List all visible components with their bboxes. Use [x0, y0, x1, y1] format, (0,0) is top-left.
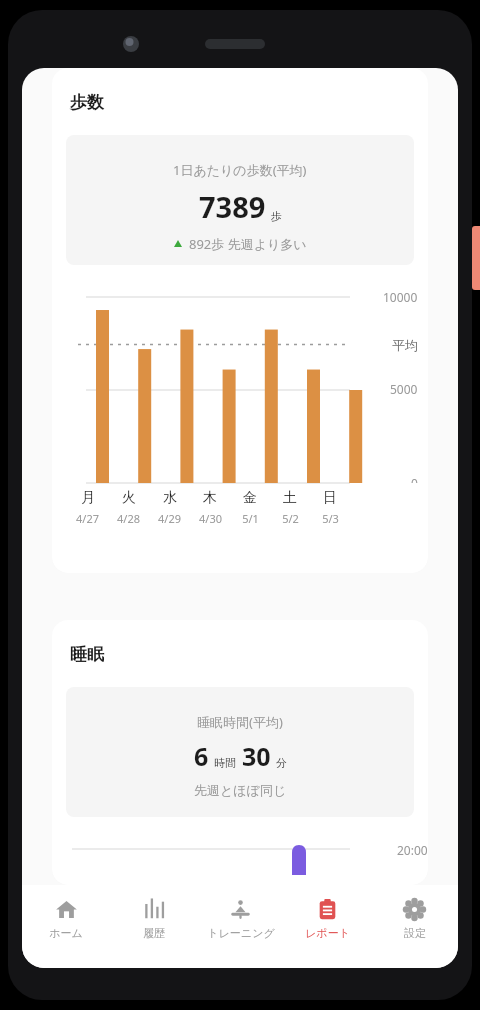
other: トレーニング — [229, 898, 252, 921]
staticText: 木 — [203, 489, 217, 507]
staticText: 設定 — [404, 926, 426, 940]
staticText: 30 — [242, 739, 271, 773]
staticText: 睡眠時間(平均) — [197, 713, 283, 731]
staticText: 金 — [243, 489, 257, 507]
staticText: レポート — [305, 926, 350, 940]
staticText: 日 — [323, 489, 337, 507]
other: 履歴 — [142, 898, 165, 921]
other: 設定 — [403, 898, 426, 921]
staticText: 月 — [81, 489, 95, 507]
button[interactable]: レポート — [284, 885, 371, 968]
staticText: 先週とほぼ同じ — [194, 782, 287, 798]
staticText: 4/28 — [117, 511, 140, 526]
staticText: 土 — [283, 489, 297, 507]
staticText: ホーム — [49, 926, 83, 940]
staticText: 歩数 — [70, 92, 104, 113]
staticText: 睡眠 — [70, 644, 104, 665]
button[interactable]: 設定 — [371, 885, 458, 968]
staticText: 6 — [194, 739, 209, 773]
staticText: トレーニング — [207, 926, 275, 940]
staticText: 時間 — [214, 756, 236, 770]
staticText: 履歴 — [143, 926, 165, 940]
other: レポート — [316, 898, 339, 921]
staticText: 4/27 — [76, 511, 99, 526]
staticText: 5000 — [390, 381, 418, 397]
staticText: 分 — [276, 756, 287, 770]
staticText: 歩 — [271, 209, 282, 223]
staticText: 10000 — [383, 289, 418, 305]
staticText: 火 — [122, 489, 136, 507]
staticText: 7389 — [199, 187, 266, 226]
staticText: 5/2 — [282, 511, 299, 526]
staticText: 4/29 — [158, 511, 181, 526]
button[interactable]: 履歴 — [110, 885, 197, 968]
staticText: 4/30 — [199, 511, 222, 526]
staticText: 1日あたりの歩数(平均) — [173, 161, 307, 179]
staticText: 平均 — [392, 337, 418, 353]
button[interactable]: ホーム — [22, 885, 110, 968]
other: ホーム — [55, 898, 78, 921]
staticText: 0 — [411, 475, 418, 483]
staticText: 水 — [163, 489, 177, 507]
staticText: 892歩 先週より多い — [189, 235, 307, 253]
button[interactable]: トレーニング — [197, 885, 284, 968]
staticText: 5/3 — [322, 511, 339, 526]
staticText: 5/1 — [242, 511, 259, 526]
staticText: 20:00 — [397, 842, 428, 858]
